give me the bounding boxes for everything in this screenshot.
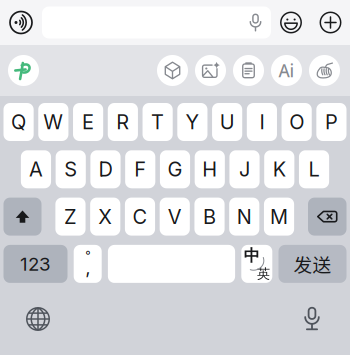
staticText: V [168,204,182,229]
button[interactable]: V [160,198,190,236]
staticText: C [132,204,147,229]
staticText: E [82,110,94,134]
staticText: U [220,110,235,134]
staticText: S [64,157,77,181]
staticText: F [134,157,146,181]
staticText: , [85,256,90,279]
button[interactable]: W [38,103,68,141]
button[interactable]: H [195,150,225,188]
button[interactable]: Voice input [0,0,42,45]
button[interactable]: C [125,198,155,236]
button[interactable]: X [90,198,120,236]
button[interactable]: AI assistant [271,55,302,86]
button[interactable]: 3D models [157,55,188,86]
button[interactable]: G [160,150,190,188]
staticText: Ai [278,59,294,82]
button[interactable]: I [247,103,277,141]
button[interactable]: More [311,0,350,45]
staticText: Z [64,204,77,229]
staticText: 中 [244,246,260,266]
button[interactable]: 123 [3,245,67,283]
staticText: I [259,110,264,134]
button[interactable]: K [264,150,294,188]
button[interactable]: Emoji [271,0,311,45]
button[interactable]: S [56,150,86,188]
staticText: 英 [257,265,270,282]
staticText: Q [11,110,26,134]
staticText: G [167,157,182,181]
staticText: R [116,110,129,134]
staticText: D [98,157,112,181]
staticText: O [289,110,304,134]
button[interactable]: 发送 [278,245,346,283]
button[interactable]: D [90,150,121,188]
staticText: M [270,204,288,229]
button[interactable]: Shift [3,198,41,236]
staticText: 123 [20,253,51,275]
button[interactable]: Chinese English toggle [241,245,272,283]
button[interactable]: Q [3,103,34,141]
staticText: B [203,204,216,229]
staticText: A [29,157,43,181]
button[interactable]: A [21,150,51,188]
staticText: L [308,157,319,181]
button[interactable]: Comma [74,245,102,283]
staticText: Y [185,110,199,134]
staticText: ° [85,248,90,263]
button[interactable]: B [194,198,225,236]
button[interactable]: Switch keyboard [7,287,69,351]
button[interactable]: Z [55,198,86,236]
staticText: J [239,157,250,181]
button[interactable]: R [108,103,138,141]
button[interactable]: Y [177,103,207,141]
button[interactable]: N [229,198,259,236]
staticText: T [151,110,164,134]
staticText: 发送 [293,250,331,277]
button[interactable]: J [229,150,260,188]
staticText: N [237,204,252,229]
staticText: P [325,110,338,134]
button[interactable]: Input method settings [8,55,39,86]
staticText: H [202,157,217,181]
button[interactable]: U [212,103,242,141]
button[interactable]: P [316,103,346,141]
staticText: X [98,204,112,229]
button[interactable]: E [73,103,103,141]
button[interactable]: L [299,150,329,188]
staticText: W [43,110,63,134]
button[interactable]: Photos [195,55,226,86]
button[interactable]: Space [108,245,235,283]
button[interactable]: O [282,103,312,141]
button[interactable]: Dictation [284,287,340,351]
button[interactable]: M [264,198,294,236]
staticText: K [273,157,286,181]
button[interactable]: Handwriting [309,55,340,86]
button[interactable]: Delete [308,198,346,236]
button[interactable]: T [142,103,173,141]
button[interactable]: Clipboard [233,55,264,86]
button[interactable]: F [125,150,155,188]
